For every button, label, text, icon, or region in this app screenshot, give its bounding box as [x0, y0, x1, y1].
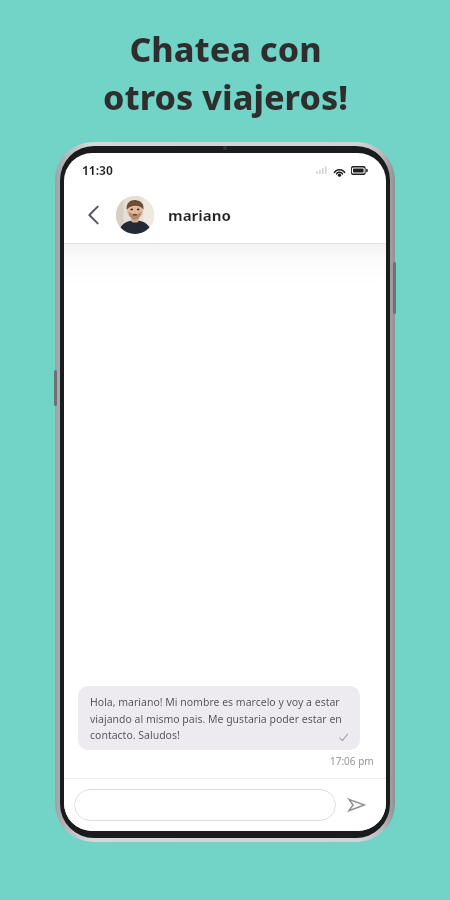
button[interactable]: Hola, mariano! Mi nombre es marcelo y vo…: [78, 686, 360, 750]
staticText: Hola, mariano! Mi nombre es marcelo y vo…: [90, 695, 348, 742]
staticText: 17:06 pm: [330, 754, 374, 768]
button[interactable]: Message input: [74, 789, 336, 821]
staticText: mariano: [168, 205, 231, 225]
staticText: Chatea con: [129, 26, 322, 72]
button[interactable]: mariano: [116, 196, 231, 234]
staticText: otros viajeros!: [103, 74, 348, 120]
staticText: 11:30: [82, 162, 113, 178]
button[interactable]: Send: [336, 785, 376, 825]
button[interactable]: Back: [76, 198, 110, 232]
